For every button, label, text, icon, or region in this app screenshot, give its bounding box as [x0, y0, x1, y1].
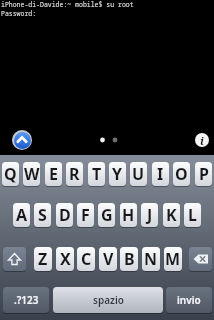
staticText: I — [157, 163, 164, 185]
staticText: Z — [38, 248, 48, 270]
button[interactable]: G — [98, 203, 115, 227]
button[interactable]: R — [66, 162, 83, 186]
staticText: P — [199, 163, 209, 185]
button[interactable]: D — [56, 203, 73, 227]
staticText: L — [188, 204, 197, 226]
staticText: spazio — [93, 293, 124, 307]
button[interactable]: E — [45, 162, 62, 186]
staticText: invio — [177, 293, 201, 307]
button[interactable]: C — [77, 247, 95, 271]
button[interactable] — [189, 247, 212, 271]
button[interactable]: A — [13, 203, 30, 227]
staticText: iPhone-di-Davide:~ mobile$ su root — [1, 0, 134, 9]
staticText: R — [69, 163, 80, 185]
button[interactable]: T — [88, 162, 105, 186]
staticText: F — [81, 204, 90, 226]
button[interactable]: K — [163, 203, 180, 227]
button[interactable] — [12, 130, 32, 150]
button[interactable]: invio — [166, 287, 212, 313]
staticText: Q — [4, 163, 17, 185]
button[interactable]: I — [152, 162, 169, 186]
button[interactable]: Q — [2, 162, 19, 186]
staticText: O — [175, 163, 188, 185]
button[interactable] — [3, 247, 26, 271]
button[interactable]: i — [195, 133, 209, 147]
staticText: B — [124, 248, 135, 270]
staticText: E — [49, 163, 58, 185]
staticText: M — [165, 248, 181, 270]
button[interactable]: U — [130, 162, 147, 186]
staticText: Y — [112, 163, 123, 185]
staticText: .?123 — [14, 293, 39, 307]
button[interactable]: .?123 — [3, 287, 49, 313]
staticText: U — [132, 163, 145, 185]
button[interactable]: W — [23, 162, 40, 186]
staticText: D — [59, 204, 71, 226]
staticText: V — [103, 248, 114, 270]
button[interactable]: F — [77, 203, 94, 227]
staticText: i — [200, 133, 204, 147]
button[interactable]: P — [195, 162, 212, 186]
button[interactable]: B — [120, 247, 138, 271]
staticText: S — [38, 204, 47, 226]
staticText: K — [166, 204, 177, 226]
button[interactable]: L — [184, 203, 201, 227]
staticText: A — [16, 204, 28, 226]
button[interactable]: V — [99, 247, 117, 271]
button[interactable]: O — [173, 162, 190, 186]
staticText: J — [147, 204, 153, 226]
button[interactable]: X — [56, 247, 74, 271]
staticText: Password: — [1, 9, 37, 18]
staticText: N — [144, 248, 158, 270]
button[interactable]: Z — [34, 247, 52, 271]
staticText: G — [101, 204, 113, 226]
button[interactable]: N — [142, 247, 160, 271]
staticText: W — [24, 163, 40, 185]
button[interactable]: H — [120, 203, 137, 227]
button[interactable]: J — [141, 203, 158, 227]
button[interactable]: M — [164, 247, 182, 271]
staticText: T — [92, 163, 102, 185]
staticText: C — [81, 248, 92, 270]
staticText: X — [60, 248, 71, 270]
button[interactable]: spazio — [53, 287, 163, 313]
button[interactable]: Y — [109, 162, 126, 186]
button[interactable]: S — [34, 203, 51, 227]
staticText: H — [122, 204, 135, 226]
